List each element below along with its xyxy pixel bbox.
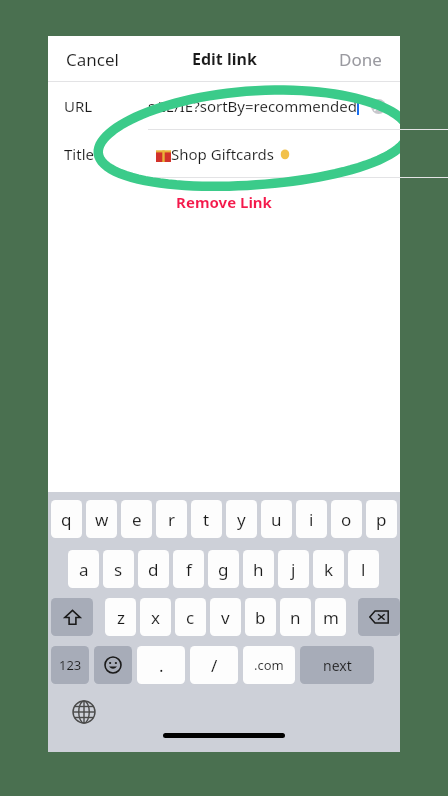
button[interactable]: b <box>245 598 276 636</box>
button[interactable]: l <box>348 550 379 588</box>
staticText: u <box>271 508 282 531</box>
staticText: Remove Link <box>48 192 400 212</box>
button[interactable]: s <box>103 550 134 588</box>
button[interactable]: Done <box>335 42 386 77</box>
button[interactable]: Cancel <box>62 42 123 77</box>
button[interactable]: .com <box>243 646 295 684</box>
staticText: Cancel <box>66 48 119 71</box>
button[interactable]: Clear text <box>371 99 386 114</box>
staticText: Done <box>339 48 382 71</box>
button[interactable]: u <box>261 500 292 538</box>
button[interactable]: Backspace <box>358 598 400 636</box>
button[interactable]: j <box>278 550 309 588</box>
button[interactable]: y <box>226 500 257 538</box>
staticText: r <box>168 508 176 531</box>
staticText: j <box>291 558 296 581</box>
button[interactable]: e <box>121 500 152 538</box>
button[interactable]: z <box>105 598 136 636</box>
staticText: .com <box>254 656 284 674</box>
button[interactable]: f <box>173 550 204 588</box>
button[interactable]: r <box>156 500 187 538</box>
button[interactable]: d <box>138 550 169 588</box>
staticText: d <box>148 558 159 581</box>
staticText: URL <box>64 96 93 116</box>
staticText: q <box>61 508 72 531</box>
staticText: w <box>95 508 109 531</box>
staticText: a <box>79 558 89 581</box>
staticText: t <box>203 508 210 531</box>
staticText: k <box>324 558 334 581</box>
button[interactable]: 123 <box>51 646 89 684</box>
button[interactable]: URL <box>48 82 400 130</box>
staticText: f <box>186 558 192 581</box>
staticText: Edit link <box>192 48 257 70</box>
button[interactable]: Switch keyboard language <box>72 700 96 724</box>
button[interactable]: c <box>175 598 206 636</box>
staticText: o <box>341 508 352 531</box>
staticText: n <box>290 606 301 629</box>
staticText: v <box>221 606 230 629</box>
button[interactable]: a <box>68 550 99 588</box>
staticText: 123 <box>59 656 82 674</box>
staticText: s <box>114 558 123 581</box>
button[interactable]: / <box>190 646 238 684</box>
staticText: e <box>132 508 142 531</box>
staticText: c <box>186 606 195 629</box>
button[interactable]: x <box>140 598 171 636</box>
button[interactable]: t <box>191 500 222 538</box>
staticText: Shop Giftcards <box>171 144 278 164</box>
staticText: i <box>309 508 314 531</box>
staticText: z <box>117 606 125 629</box>
staticText: y <box>237 508 246 531</box>
staticText: b <box>255 606 266 629</box>
staticText: next <box>323 656 352 675</box>
button[interactable]: v <box>210 598 241 636</box>
staticText: / <box>211 654 218 677</box>
button[interactable]: Emoji <box>94 646 132 684</box>
button[interactable]: h <box>243 550 274 588</box>
button[interactable]: g <box>208 550 239 588</box>
button[interactable]: q <box>51 500 82 538</box>
button[interactable]: Shift <box>51 598 93 636</box>
staticText: p <box>376 508 387 531</box>
staticText: m <box>323 606 339 629</box>
staticText: . <box>159 654 164 677</box>
staticText: l <box>361 558 366 581</box>
button[interactable]: Title <box>48 130 400 178</box>
button[interactable]: o <box>331 500 362 538</box>
staticText: g <box>218 558 229 581</box>
button[interactable]: p <box>366 500 397 538</box>
button[interactable]: k <box>313 550 344 588</box>
button[interactable]: next <box>300 646 374 684</box>
staticText: x <box>151 606 160 629</box>
button[interactable]: m <box>315 598 346 636</box>
button[interactable]: n <box>280 598 311 636</box>
staticText: h <box>253 558 264 581</box>
button[interactable]: w <box>86 500 117 538</box>
staticText: Title <box>64 144 94 164</box>
button[interactable]: Remove Link <box>48 188 400 216</box>
button[interactable]: . <box>137 646 185 684</box>
staticText: s/IE/IE?sortBy=recommended <box>148 96 357 116</box>
button[interactable]: i <box>296 500 327 538</box>
